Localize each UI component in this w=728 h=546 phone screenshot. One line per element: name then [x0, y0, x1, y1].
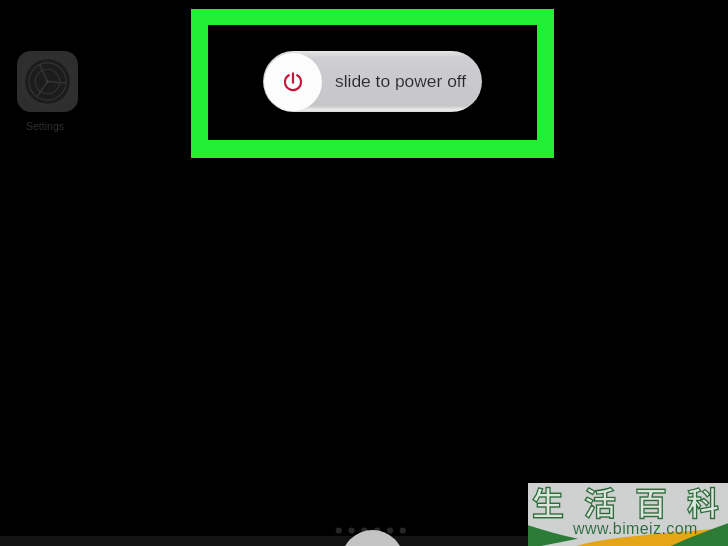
other: Settings [17, 51, 78, 112]
staticText: www.bimeiz.com [573, 520, 698, 538]
staticText: 生 [532, 478, 565, 524]
staticText: 百 [635, 478, 668, 524]
staticText: Settings [14, 120, 76, 132]
staticText: 活 [584, 478, 617, 524]
staticText: 百 [635, 478, 668, 524]
staticText: slide to power off [335, 71, 467, 90]
staticText: 生 [532, 478, 565, 524]
button[interactable]: Settings [15, 51, 77, 134]
other: Slide to power off [264, 53, 322, 111]
staticText: 科 [687, 478, 720, 524]
staticText: 活 [584, 478, 617, 524]
button[interactable]: slide to power off [263, 51, 482, 112]
staticText: 科 [687, 478, 720, 524]
